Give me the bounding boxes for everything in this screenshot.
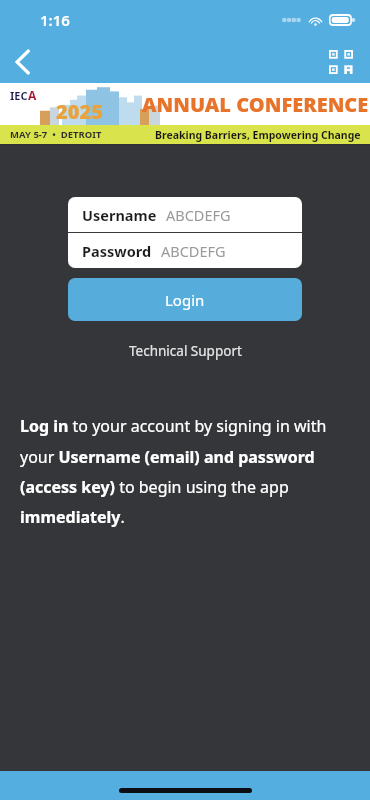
button[interactable]: Password bbox=[68, 233, 302, 268]
button[interactable]: Technical Support bbox=[117, 338, 254, 364]
staticText: Username bbox=[82, 205, 157, 225]
staticText: Log in to your account by signing in wit… bbox=[20, 415, 352, 527]
staticText: ABCDEFG bbox=[161, 241, 226, 261]
staticText: MAY 5-7 • DETROIT bbox=[10, 128, 102, 141]
staticText: A bbox=[28, 87, 37, 103]
staticText: 2025 bbox=[56, 98, 103, 125]
button[interactable]: Scan QR code bbox=[322, 43, 360, 81]
staticText: Password bbox=[82, 241, 152, 261]
staticText: Breaking Barriers, Empowering Change bbox=[155, 128, 361, 142]
button[interactable]: Back bbox=[0, 40, 44, 83]
staticText: Technical Support bbox=[129, 342, 242, 360]
button[interactable]: Username bbox=[68, 197, 302, 232]
button[interactable]: Login bbox=[68, 278, 302, 321]
staticText: ABCDEFG bbox=[166, 205, 231, 225]
staticText: 1:16 bbox=[40, 10, 70, 30]
staticText: ANNUAL CONFERENCE bbox=[142, 91, 369, 118]
staticText: Login bbox=[165, 290, 205, 310]
staticText: IEC bbox=[10, 88, 28, 103]
